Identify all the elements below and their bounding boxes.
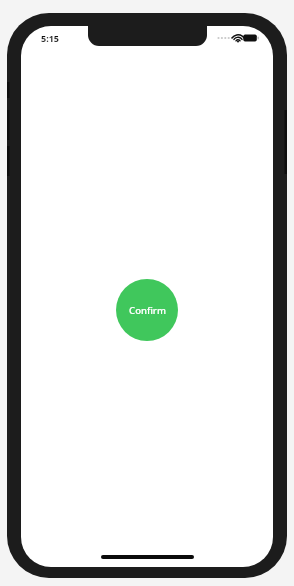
- button[interactable]: Confirm: [116, 279, 178, 341]
- staticText: Confirm: [129, 304, 166, 317]
- staticText: 5:15: [41, 32, 59, 44]
